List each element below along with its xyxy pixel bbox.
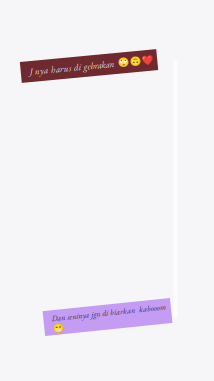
- button[interactable]: Dan seninya jgn di biarkan kabooom: [43, 304, 171, 329]
- staticText: J nya harus di gebrakan: [29, 60, 114, 72]
- staticText: 🙄🙃❤️: [117, 60, 153, 71]
- staticText: 😁: [51, 318, 63, 329]
- button[interactable]: J nya harus di gebrakan: [20, 55, 157, 76]
- staticText: Dan seninya jgn di biarkan kabooom: [51, 307, 166, 318]
